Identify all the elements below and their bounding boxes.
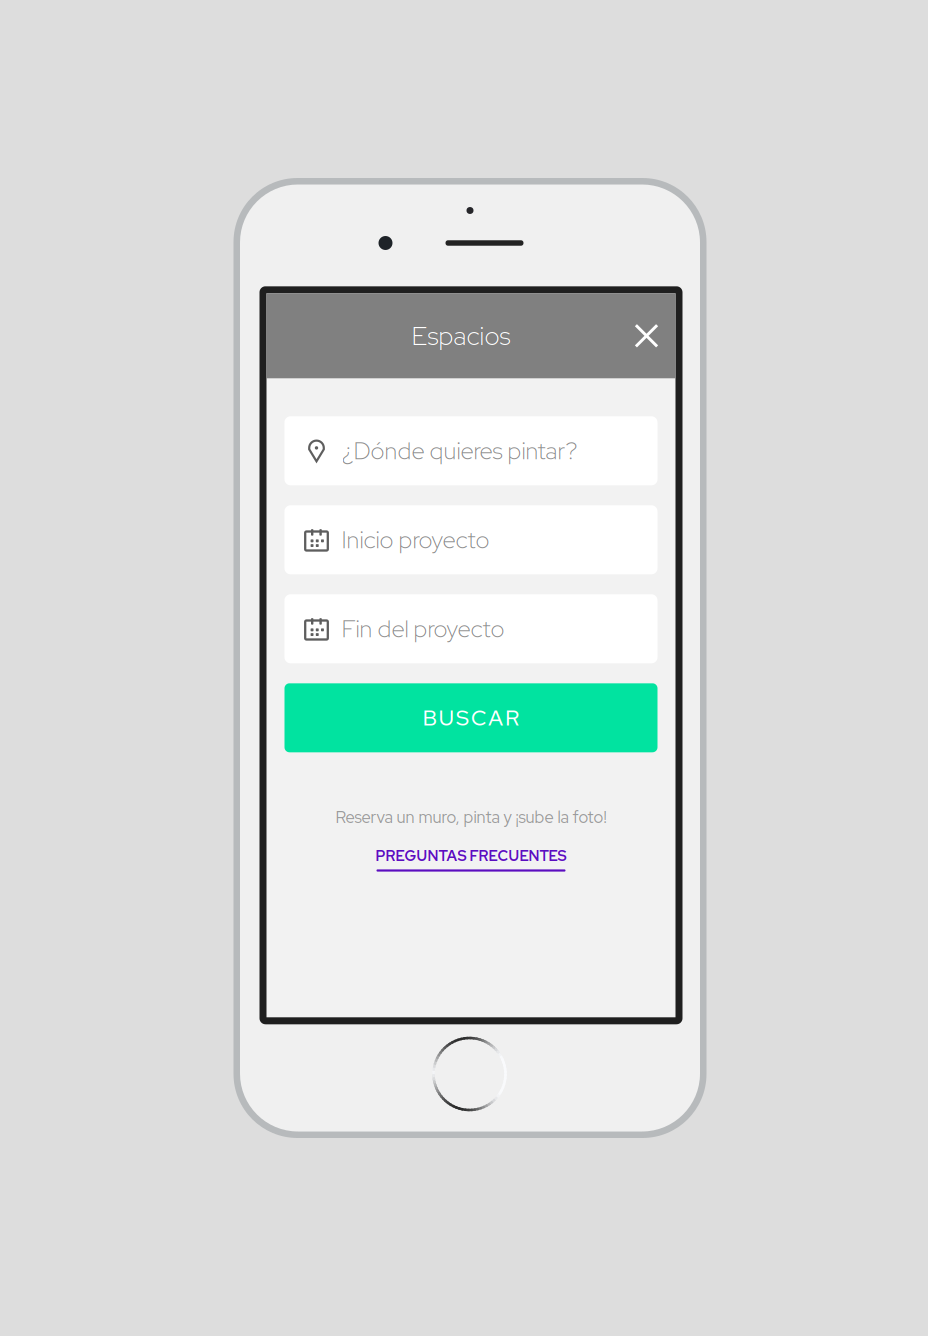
staticText: Reserva un muro, pinta y ¡sube la foto!	[335, 806, 606, 828]
button[interactable]: Fin del proyecto	[284, 594, 657, 663]
button[interactable]: ¿Dónde quieres pintar?	[284, 416, 657, 485]
staticText: BUSCAR	[423, 704, 519, 732]
button[interactable]: PREGUNTAS FRECUENTES	[375, 846, 566, 872]
staticText: Inicio proyecto	[341, 524, 489, 556]
staticText: Espacios	[411, 319, 510, 353]
button[interactable]: BUSCAR	[284, 683, 657, 752]
staticText: ¿Dónde quieres pintar?	[341, 435, 577, 467]
button[interactable]: Cerrar	[625, 315, 667, 357]
button[interactable]: Inicio proyecto	[284, 505, 657, 574]
staticText: PREGUNTAS FRECUENTES	[375, 846, 566, 865]
staticText: Fin del proyecto	[341, 613, 504, 645]
